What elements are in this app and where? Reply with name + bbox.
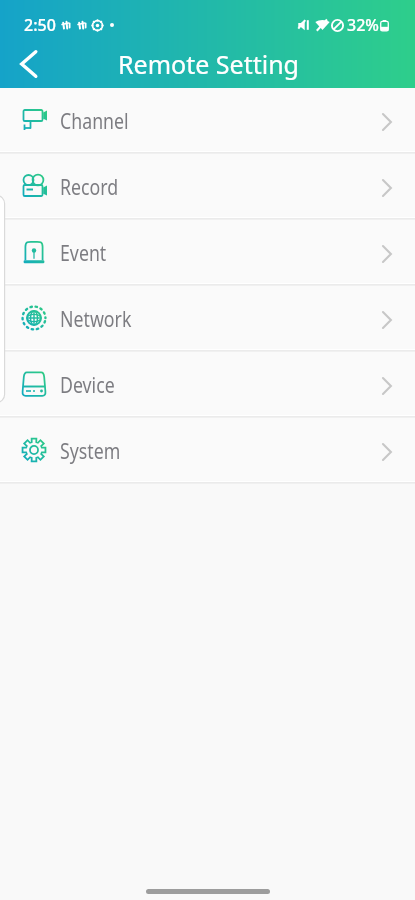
staticText: 32% — [347, 14, 379, 36]
button[interactable]: Event — [0, 220, 415, 283]
staticText: Network — [60, 305, 132, 334]
staticText: Remote Setting — [118, 47, 299, 81]
button[interactable]: System — [0, 418, 415, 481]
button[interactable]: Channel — [0, 88, 415, 151]
staticText: Device — [60, 371, 115, 400]
button[interactable]: Network — [0, 286, 415, 349]
button[interactable]: Device — [0, 352, 415, 415]
staticText: System — [60, 437, 121, 466]
button[interactable]: Record — [0, 154, 415, 217]
staticText: Channel — [60, 107, 129, 136]
staticText: 2:50 — [24, 14, 56, 36]
staticText: Event — [60, 239, 106, 268]
button[interactable]: Back — [4, 40, 52, 88]
staticText: Record — [60, 173, 118, 202]
